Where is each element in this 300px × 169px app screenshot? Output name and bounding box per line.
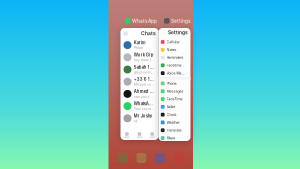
staticText: WhatsApp (134, 101, 153, 106)
staticText: Safari (167, 105, 176, 109)
staticText: Mr Joshy (134, 113, 152, 118)
staticText: ok (134, 119, 138, 123)
button[interactable]: WhatsApp (125, 18, 157, 24)
staticText: Missed voice call (134, 82, 153, 87)
button[interactable]: Chats (120, 28, 158, 140)
staticText: Chats (141, 30, 156, 36)
staticText: good morning all (134, 70, 153, 74)
button[interactable]: Settings (158, 28, 190, 141)
staticText: +33 6 12 34 (134, 77, 153, 82)
staticText: Settings (171, 18, 191, 24)
staticText: hey there today (134, 58, 153, 62)
staticText: Photo (134, 46, 143, 50)
staticText: WhatsApp (132, 18, 157, 24)
staticText: Clock (167, 113, 177, 117)
staticText: see you soon (134, 94, 153, 99)
staticText: Weather (167, 120, 180, 125)
staticText: Karim (134, 40, 146, 45)
staticText: FaceTime (167, 97, 183, 101)
staticText: Messages (167, 89, 184, 93)
staticText: Facetime (167, 63, 182, 67)
staticText: Notes (167, 48, 177, 52)
staticText: Voice Memos (167, 71, 186, 75)
staticText: Cellular (167, 40, 180, 44)
staticText: Maps (167, 136, 176, 140)
staticText: Work Grp (134, 52, 153, 57)
staticText: Settings (168, 30, 188, 35)
staticText: Phone (167, 81, 177, 86)
staticText: Reminders (167, 55, 184, 60)
staticText: Sabah family (134, 65, 153, 70)
staticText: Translate (167, 128, 182, 132)
button[interactable]: Settings (164, 18, 191, 24)
staticText: Your security code (134, 107, 153, 111)
staticText: Ahmed Bey (134, 89, 153, 94)
